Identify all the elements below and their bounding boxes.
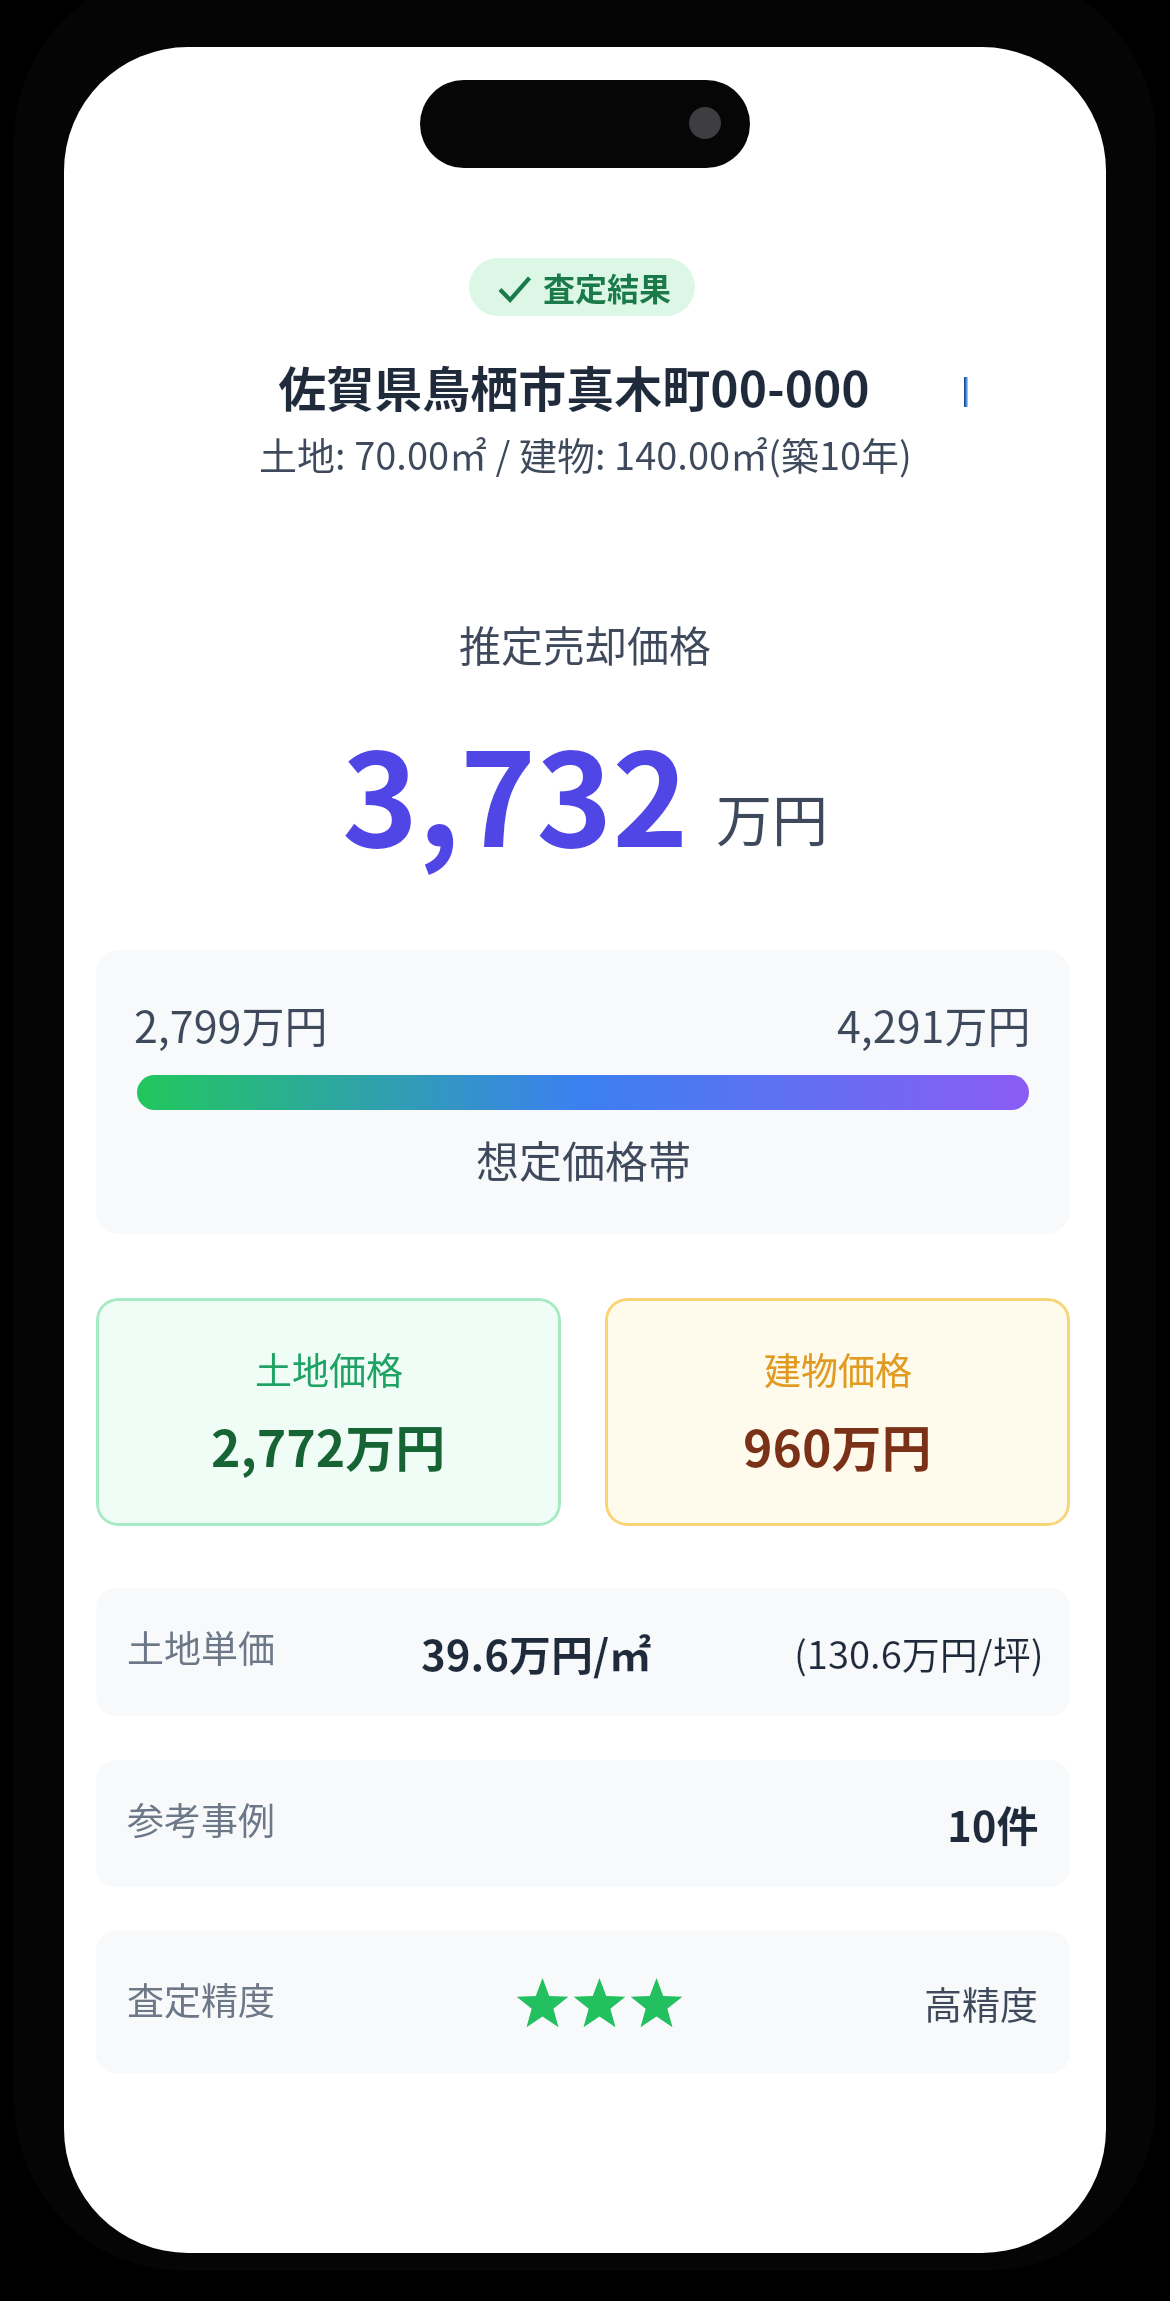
staticText: 土地単価	[127, 1620, 275, 1674]
staticText: 査定精度	[127, 1972, 275, 2026]
button[interactable]: 査定結果	[469, 258, 695, 316]
button[interactable]: 土地単価	[96, 1588, 1070, 1716]
staticText: 推定売却価格	[459, 613, 712, 674]
staticText: (130.6万円/坪)	[794, 1625, 1044, 1680]
staticText: 参考事例	[127, 1792, 275, 1846]
staticText: 3,732	[342, 697, 689, 884]
other: Rating: 3 of 3 stars	[514, 1978, 685, 2027]
button[interactable]: 参考事例	[96, 1760, 1070, 1887]
button[interactable]: 建物価格	[605, 1298, 1070, 1526]
staticText: 土地: 70.00㎡ / 建物: 140.00㎡(築10年)	[259, 426, 912, 481]
staticText: 土地価格	[255, 1342, 403, 1396]
staticText: 想定価格帯	[476, 1128, 691, 1190]
staticText: 10件	[947, 1793, 1039, 1854]
staticText: 39.6万円/㎡	[421, 1622, 652, 1683]
staticText: 高精度	[924, 1975, 1039, 2030]
staticText: 佐賀県鳥栖市真木町00-000	[278, 351, 870, 421]
staticText: 2,799万円	[134, 993, 328, 1055]
staticText: 2,772万円	[211, 1409, 446, 1481]
staticText: 960万円	[743, 1409, 932, 1481]
button[interactable]: 査定精度	[96, 1931, 1070, 2073]
staticText: 4,291万円	[837, 993, 1031, 1055]
staticText: 建物価格	[764, 1342, 912, 1396]
staticText: 万円	[716, 776, 828, 857]
button[interactable]: 土地価格	[96, 1298, 561, 1526]
staticText: 査定結果	[543, 264, 672, 310]
